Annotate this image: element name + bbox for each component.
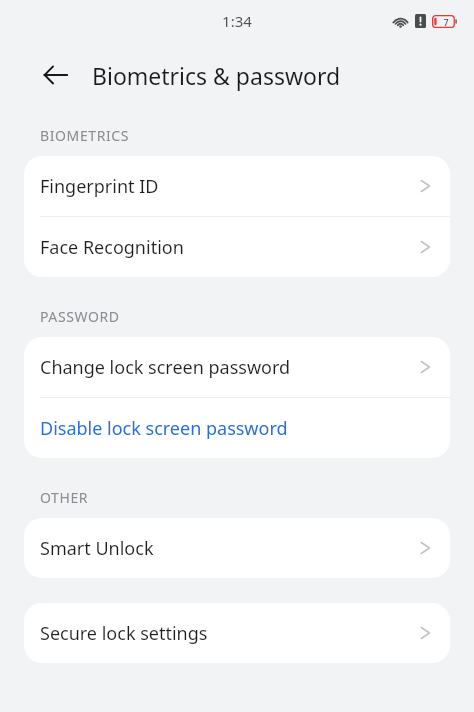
staticText: OTHER [40, 488, 89, 507]
button[interactable]: Secure lock settings [24, 603, 450, 663]
staticText: Secure lock settings [40, 621, 419, 646]
staticText: PASSWORD [40, 307, 120, 326]
staticText: 7 [443, 16, 449, 28]
button[interactable]: Smart Unlock [24, 518, 450, 578]
staticText: BIOMETRICS [40, 126, 130, 145]
button[interactable]: Disable lock screen password [24, 398, 450, 458]
staticText: Change lock screen password [40, 355, 419, 380]
staticText: Disable lock screen password [40, 416, 432, 441]
staticText: Biometrics & password [92, 60, 341, 91]
staticText: Fingerprint ID [40, 174, 419, 199]
staticText: Face Recognition [40, 235, 419, 260]
button[interactable]: Face Recognition [24, 217, 450, 277]
button[interactable]: Change lock screen password [24, 337, 450, 397]
staticText: 1:34 [222, 11, 252, 31]
staticText: Smart Unlock [40, 536, 419, 561]
button[interactable]: Back [38, 58, 72, 92]
button[interactable]: Fingerprint ID [24, 156, 450, 216]
